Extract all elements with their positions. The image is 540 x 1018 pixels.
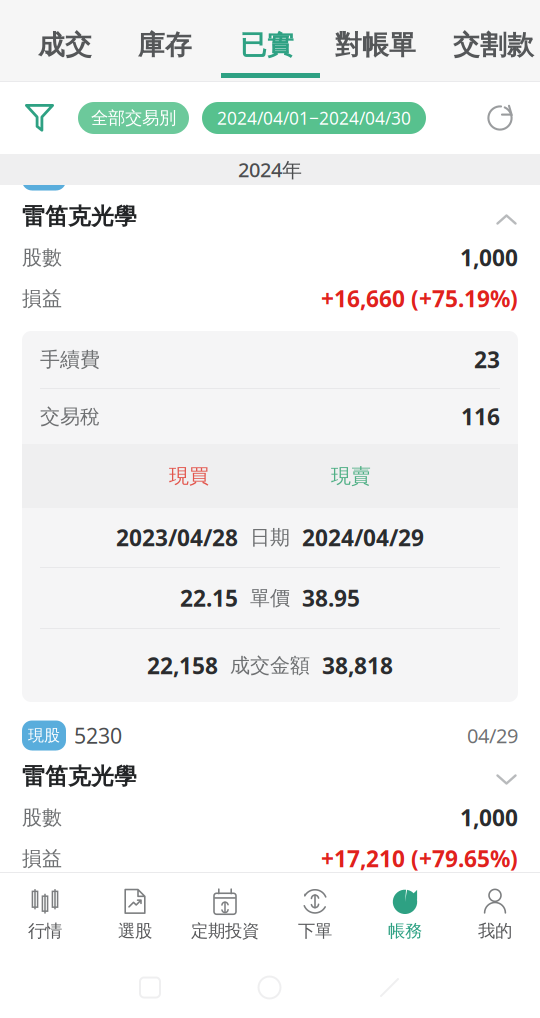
- button[interactable]: 行情: [0, 873, 90, 957]
- staticText: 22,158: [147, 650, 218, 680]
- staticText: 交易稅: [40, 404, 100, 429]
- staticText: 38.95: [302, 583, 360, 613]
- button[interactable]: 已實: [238, 29, 296, 61]
- staticText: 損益: [22, 286, 62, 311]
- button[interactable]: 下單: [270, 873, 360, 957]
- staticText: 雷笛克光學: [22, 203, 137, 230]
- staticText: 23: [474, 344, 500, 374]
- staticText: 手續費: [40, 347, 100, 372]
- staticText: 對帳單: [335, 29, 416, 61]
- staticText: +16,660 (+75.19%): [321, 283, 518, 313]
- staticText: 5230: [74, 161, 122, 190]
- staticText: 116: [461, 401, 500, 431]
- staticText: 38,818: [322, 650, 393, 680]
- staticText: 2024/04/01−2024/04/30: [217, 106, 411, 129]
- staticText: 帳務: [388, 920, 422, 942]
- staticText: 2023/04/28: [116, 522, 238, 552]
- staticText: 04/28: [467, 162, 518, 189]
- button[interactable]: 對帳單: [333, 29, 418, 61]
- staticText: 下單: [298, 920, 332, 942]
- staticText: 股數: [22, 805, 62, 830]
- staticText: 雷笛克光學: [22, 763, 137, 790]
- staticText: 成交金額: [230, 653, 310, 678]
- staticText: 庫存: [138, 29, 192, 61]
- staticText: 行情: [28, 920, 62, 942]
- button[interactable]: 選股: [90, 873, 180, 957]
- button[interactable]: Refresh: [483, 100, 518, 136]
- button[interactable]: Collapse: [496, 214, 517, 225]
- staticText: 22.15: [180, 583, 238, 613]
- staticText: 單價: [250, 586, 290, 610]
- staticText: 現股: [28, 726, 60, 745]
- button[interactable]: 我的: [450, 873, 540, 957]
- button[interactable]: 帳務: [360, 873, 450, 957]
- staticText: 我的: [478, 920, 512, 942]
- staticText: 2024/04/29: [302, 522, 424, 552]
- staticText: 日期: [250, 525, 290, 550]
- staticText: 股數: [22, 245, 62, 270]
- staticText: 現買: [169, 464, 209, 488]
- button[interactable]: Filter: [22, 101, 57, 135]
- staticText: 1,000: [460, 802, 518, 832]
- button[interactable]: 全部交易別: [78, 102, 189, 134]
- staticText: 交割款: [453, 29, 534, 61]
- staticText: 04/29: [467, 722, 518, 749]
- staticText: +17,210 (+79.65%): [321, 843, 518, 873]
- button[interactable]: Recent apps: [140, 977, 160, 997]
- button[interactable]: 交割款: [451, 29, 536, 61]
- staticText: 現賣: [331, 464, 371, 488]
- button[interactable]: Expand: [496, 774, 517, 785]
- button[interactable]: 定期投資: [180, 873, 270, 957]
- staticText: 選股: [118, 920, 152, 942]
- staticText: 2024年: [238, 156, 302, 183]
- button[interactable]: Back: [379, 977, 400, 998]
- staticText: 1,000: [460, 242, 518, 272]
- staticText: 已實: [240, 29, 294, 61]
- button[interactable]: 2024/04/01−2024/04/30: [202, 102, 426, 134]
- button[interactable]: 庫存: [136, 29, 194, 61]
- staticText: 成交: [38, 29, 92, 61]
- staticText: 全部交易別: [91, 107, 176, 129]
- staticText: 5230: [74, 721, 122, 750]
- staticText: 損益: [22, 846, 62, 871]
- button[interactable]: 成交: [36, 29, 94, 61]
- button[interactable]: Home: [258, 976, 280, 998]
- staticText: 定期投資: [191, 920, 259, 942]
